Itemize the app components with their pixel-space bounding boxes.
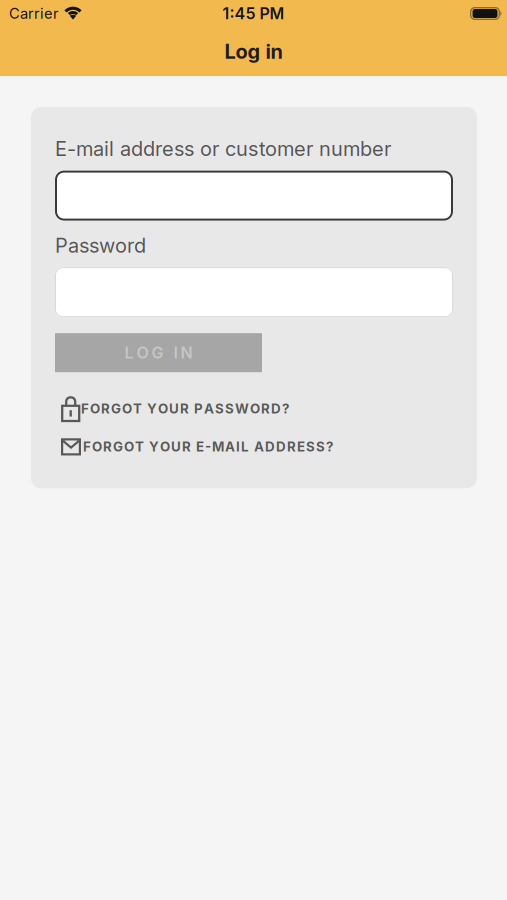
staticText: Log in	[224, 40, 282, 63]
button[interactable]: Log in	[55, 333, 262, 372]
staticText: F O R G O T Y O U R P A S S W O R D ?	[81, 401, 289, 416]
staticText: Carrier	[9, 5, 59, 22]
button[interactable]: F O R G O T Y O U R E - M A I L A D D R …	[55, 437, 333, 456]
staticText: 1:45 PM	[222, 4, 284, 23]
staticText: Password	[55, 234, 146, 257]
staticText: E-mail address or customer number	[55, 137, 391, 161]
staticText: F O R G O T Y O U R E - M A I L A D D R …	[83, 439, 333, 454]
button[interactable]: E-mail address or customer number	[55, 171, 453, 221]
staticText: L O G I N	[124, 343, 192, 362]
button[interactable]: Password	[55, 267, 453, 317]
button[interactable]: F O R G O T Y O U R P A S S W O R D ?	[55, 395, 289, 422]
